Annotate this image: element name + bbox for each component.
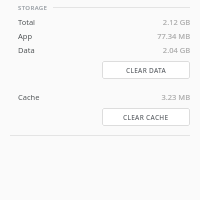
staticText: Data — [18, 45, 35, 55]
staticText: CLEAR CACHE — [123, 113, 169, 122]
button[interactable]: CLEAR DATA — [102, 61, 190, 79]
staticText: 2.04 GB — [162, 45, 190, 55]
staticText: Cache — [18, 92, 40, 102]
staticText: 77.34 MB — [157, 31, 190, 41]
staticText: 3.23 MB — [161, 92, 190, 102]
staticText: Total — [18, 17, 36, 27]
staticText: App — [18, 31, 33, 41]
staticText: 2.12 GB — [162, 17, 190, 27]
staticText: STORAGE — [18, 4, 48, 12]
button[interactable]: CLEAR CACHE — [102, 108, 190, 126]
staticText: CLEAR DATA — [126, 66, 167, 75]
